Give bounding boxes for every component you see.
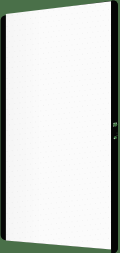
button[interactable]: Phone mockup [0,0,120,253]
